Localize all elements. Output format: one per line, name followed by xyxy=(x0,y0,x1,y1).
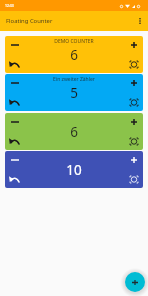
button[interactable]: Add counter xyxy=(125,272,145,292)
button[interactable]: Increment xyxy=(124,36,143,54)
staticText: DEMO COUNTER xyxy=(54,38,94,45)
button[interactable]: Decrement xyxy=(5,74,24,92)
staticText: 10 xyxy=(66,161,82,179)
button[interactable]: Undo xyxy=(5,132,24,150)
button[interactable]: Decrement xyxy=(5,151,24,169)
staticText: Ein zweiter Zähler xyxy=(53,76,95,83)
button[interactable]: Decrement xyxy=(5,36,24,54)
staticText: Floating Counter xyxy=(6,17,53,25)
button[interactable]: Increment xyxy=(124,113,143,131)
staticText: 5 xyxy=(70,84,78,102)
button[interactable]: Reset xyxy=(124,132,143,150)
button[interactable]: Reset xyxy=(124,170,143,188)
button[interactable]: Increment xyxy=(124,151,143,169)
staticText: 6 xyxy=(70,123,78,141)
button[interactable]: Decrement xyxy=(5,113,143,150)
staticText: 6 xyxy=(70,46,78,64)
button[interactable]: Reset xyxy=(124,93,143,111)
button[interactable]: Decrement xyxy=(5,74,143,111)
button[interactable]: Undo xyxy=(5,170,24,188)
button[interactable]: More options xyxy=(132,11,148,31)
button[interactable]: Undo xyxy=(5,55,24,73)
button[interactable]: Decrement xyxy=(5,36,143,73)
button[interactable]: Undo xyxy=(5,93,24,111)
button[interactable]: Decrement xyxy=(5,151,143,188)
button[interactable]: Increment xyxy=(124,74,143,92)
button[interactable]: Reset xyxy=(124,55,143,73)
staticText: 12:33 xyxy=(5,3,14,8)
button[interactable]: Decrement xyxy=(5,113,24,131)
